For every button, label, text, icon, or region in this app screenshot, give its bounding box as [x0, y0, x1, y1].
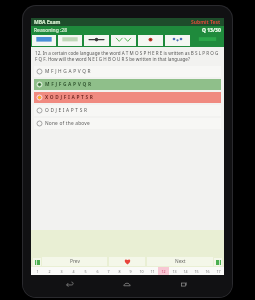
staticText: 2	[48, 269, 51, 274]
button[interactable]: Bookmark	[109, 257, 145, 266]
staticText: X O D J F I A P T S R	[45, 94, 94, 101]
button[interactable]: First question	[33, 258, 41, 266]
staticText: O D J E I A P T S R	[45, 107, 88, 114]
button[interactable]: M F J F G A P V Q R	[34, 79, 221, 90]
button[interactable]: 11	[147, 267, 158, 275]
staticText: None of the above	[45, 120, 90, 127]
staticText: Submit Test	[191, 19, 221, 26]
button[interactable]: Calc	[111, 35, 136, 46]
button[interactable]: Bookmark	[192, 35, 223, 46]
staticText: 1	[36, 269, 39, 274]
button[interactable]: Prev	[42, 257, 107, 266]
button[interactable]: Hindi	[84, 35, 109, 46]
staticText: 6	[96, 269, 99, 274]
staticText: 7	[107, 269, 110, 274]
staticText: 14	[183, 269, 188, 274]
button[interactable]: Submit Test	[191, 19, 221, 26]
staticText: 5	[84, 269, 87, 274]
staticText: 11	[150, 269, 155, 274]
button[interactable]: 9	[125, 267, 136, 275]
staticText: 15	[194, 269, 199, 274]
staticText: Q 13/30	[202, 27, 221, 34]
button[interactable]: O D J E I A P T S R	[34, 105, 221, 116]
button[interactable]: Recent apps	[175, 275, 193, 293]
button[interactable]: Profile	[165, 35, 190, 46]
staticText: 8	[118, 269, 121, 274]
button[interactable]: 4	[67, 267, 79, 275]
button[interactable]: 1	[31, 267, 43, 275]
staticText: Prev	[70, 258, 80, 265]
staticText: 12. In a certain code language the word …	[35, 50, 220, 62]
button[interactable]: M F J H G A P V Q R	[34, 66, 221, 77]
button[interactable]: 13	[169, 267, 180, 275]
staticText: 4	[72, 269, 75, 274]
button[interactable]: 12	[158, 267, 169, 275]
button[interactable]: Pause	[58, 35, 82, 46]
button[interactable]: 7	[103, 267, 114, 275]
staticText: 17	[216, 269, 221, 274]
staticText: Next	[175, 258, 186, 265]
staticText: M F J F G A P V Q R	[45, 81, 92, 88]
button[interactable]: Report	[138, 35, 163, 46]
staticText: 12	[161, 269, 166, 274]
button[interactable]: 15	[191, 267, 202, 275]
staticText: Reasoning :28	[34, 27, 68, 34]
button[interactable]: Back	[61, 275, 79, 293]
button[interactable]: Last question	[214, 258, 222, 266]
button[interactable]: 5	[79, 267, 91, 275]
staticText: MBA Exam	[34, 19, 61, 26]
button[interactable]: Timer	[32, 35, 56, 46]
staticText: 9	[129, 269, 132, 274]
button[interactable]: 8	[114, 267, 125, 275]
button[interactable]: 14	[180, 267, 191, 275]
button[interactable]: 2	[43, 267, 55, 275]
button[interactable]: Home	[118, 275, 136, 293]
staticText: 13	[172, 269, 177, 274]
staticText: 10	[139, 269, 144, 274]
button[interactable]: None of the above	[34, 118, 221, 129]
button[interactable]: 6	[91, 267, 103, 275]
button[interactable]: Next	[147, 257, 213, 266]
button[interactable]: X O D J F I A P T S R	[34, 92, 221, 103]
staticText: M F J H G A P V Q R	[45, 68, 91, 75]
button[interactable]: 17	[213, 267, 224, 275]
staticText: 3	[60, 269, 63, 274]
staticText: 16	[205, 269, 210, 274]
button[interactable]: 16	[202, 267, 213, 275]
button[interactable]: 10	[136, 267, 147, 275]
button[interactable]: 3	[55, 267, 67, 275]
